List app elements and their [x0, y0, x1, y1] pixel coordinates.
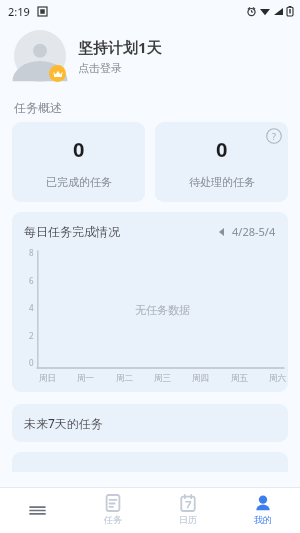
staticText: 0 [29, 357, 34, 368]
button[interactable]: 菜单 [0, 487, 75, 533]
staticText: 已完成的任务 [46, 175, 112, 189]
button[interactable]: 每日任务完成情况 [12, 212, 288, 392]
staticText: 点击登录 [78, 61, 122, 75]
button[interactable]: 0 [155, 122, 288, 202]
staticText: 周四 [192, 373, 209, 384]
staticText: 2:19 [8, 4, 30, 19]
staticText: ? [272, 130, 276, 142]
staticText: 周一 [77, 373, 94, 384]
staticText: 周五 [231, 373, 248, 384]
staticText: 8 [29, 247, 34, 258]
staticText: 周二 [116, 373, 133, 384]
staticText: 4 [29, 302, 34, 313]
staticText: 无任务数据 [135, 303, 190, 317]
staticText: 任务概述 [14, 100, 62, 115]
staticText: 6 [29, 275, 34, 286]
staticText: 周三 [154, 373, 171, 384]
staticText: 0 [216, 136, 228, 163]
staticText: 周六 [269, 373, 286, 384]
staticText: 任务 [104, 514, 122, 525]
button[interactable]: 帮助 [266, 128, 282, 144]
staticText: 周日 [39, 373, 56, 384]
staticText: 我的 [254, 514, 272, 525]
staticText: 0 [73, 136, 85, 163]
staticText: 坚持计划1天 [78, 37, 162, 57]
staticText: 每日任务完成情况 [24, 224, 120, 239]
button[interactable]: 日历 [150, 487, 225, 533]
staticText: 2 [29, 330, 34, 341]
button[interactable]: 上一周 [218, 224, 276, 239]
button[interactable]: 未来7天的任务 [12, 404, 288, 442]
button[interactable]: 坚持计划1天 [0, 22, 300, 90]
other: 上一周 [218, 228, 226, 236]
button[interactable]: 我的 [225, 487, 300, 533]
button[interactable]: 任务 [75, 487, 150, 533]
staticText: 待处理的任务 [189, 175, 255, 189]
staticText: 日历 [179, 514, 197, 525]
staticText: 未来7天的任务 [24, 415, 103, 431]
button[interactable]: 0 [12, 122, 145, 202]
staticText: 4/28-5/4 [232, 224, 276, 239]
